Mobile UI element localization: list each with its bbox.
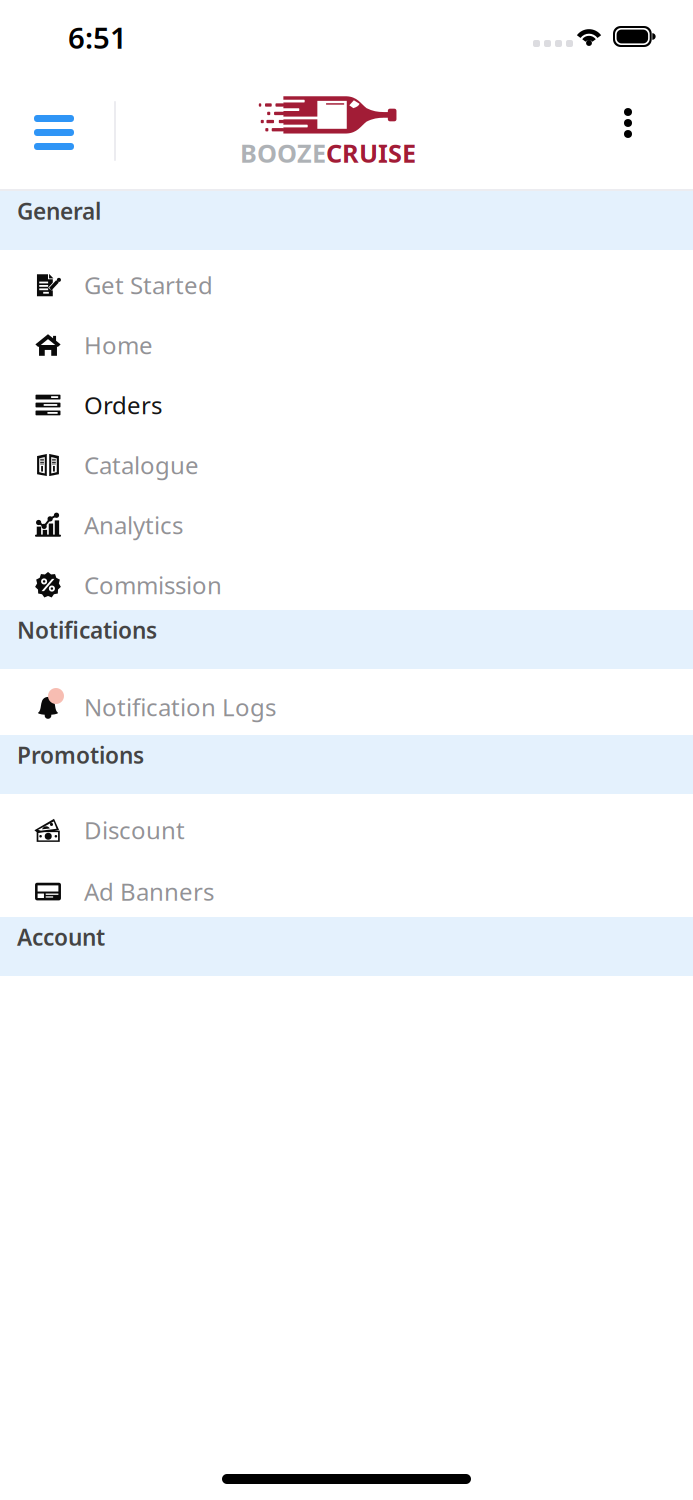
staticText: Commission [84,569,222,601]
staticText: Notifications [17,615,157,645]
staticText: Promotions [17,740,144,770]
staticText: Home [84,329,153,361]
staticText: Account [17,922,105,952]
staticText: 6:51 [68,18,127,57]
staticText: Discount [84,814,185,846]
button[interactable]: Notification Logs [0,669,693,735]
staticText: BOOZE [240,136,326,170]
button[interactable]: Analytics [0,490,693,550]
button[interactable]: Discount [0,794,693,856]
staticText: CRUISE [326,136,416,170]
button[interactable]: Get Started [0,250,693,310]
staticText: Get Started [84,269,213,301]
staticText: Analytics [84,509,183,541]
button[interactable]: Ad Banners [0,856,693,917]
staticText: Orders [84,389,162,421]
staticText: Ad Banners [84,876,214,907]
button[interactable]: Orders [0,370,693,430]
staticText: General [17,196,101,226]
button[interactable]: Menu [0,70,74,150]
button[interactable]: Home [0,310,693,370]
staticText: Notification Logs [84,691,276,723]
button[interactable]: Commission [0,550,693,610]
staticText: Catalogue [84,449,199,481]
button[interactable]: More options [608,106,648,140]
button[interactable]: Catalogue [0,430,693,490]
